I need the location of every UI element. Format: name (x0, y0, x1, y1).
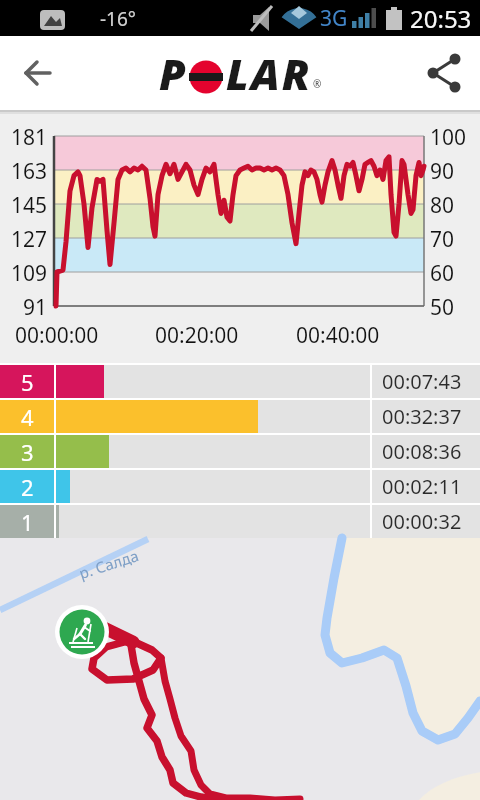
button[interactable] (418, 45, 474, 101)
staticText: 4 (21, 402, 34, 432)
staticText: 100 (430, 123, 467, 152)
staticText: 145 (11, 191, 48, 220)
staticText: 00:40:00 (296, 321, 380, 350)
staticText: 90 (430, 157, 455, 186)
staticText: 00:20:00 (155, 321, 239, 350)
staticText: 5 (21, 367, 34, 397)
staticText: 2 (21, 472, 34, 502)
staticText: 109 (11, 259, 48, 288)
staticText: 60 (430, 259, 455, 288)
staticText: 00:07:43 (382, 368, 462, 395)
button[interactable]: 5 (0, 365, 480, 398)
staticText: 00:02:11 (382, 473, 462, 500)
staticText: 181 (11, 123, 48, 152)
button[interactable]: 1 (0, 505, 480, 538)
staticText: 127 (11, 225, 48, 254)
staticText: 00:00:32 (382, 508, 462, 535)
staticText: P (159, 44, 186, 103)
button[interactable]: 3 (0, 435, 480, 468)
staticText: 3G (320, 4, 348, 33)
staticText: 163 (11, 157, 48, 186)
button[interactable] (0, 45, 56, 101)
button[interactable]: 4 (0, 400, 480, 433)
staticText: р. Салда (76, 545, 141, 583)
staticText: 1 (21, 507, 34, 537)
staticText: 80 (430, 191, 455, 220)
staticText: -16° (100, 6, 136, 32)
staticText: 00:32:37 (382, 403, 462, 430)
button[interactable]: 2 (0, 470, 480, 503)
staticText: 70 (430, 225, 455, 254)
staticText: 91 (23, 293, 48, 322)
staticText: 00:08:36 (382, 438, 462, 465)
staticText: LAR (226, 44, 312, 103)
staticText: 00:00:00 (15, 321, 99, 350)
staticText: 50 (430, 293, 455, 322)
staticText: ® (313, 77, 322, 91)
staticText: 3 (21, 437, 34, 467)
staticText: 20:53 (410, 2, 472, 35)
